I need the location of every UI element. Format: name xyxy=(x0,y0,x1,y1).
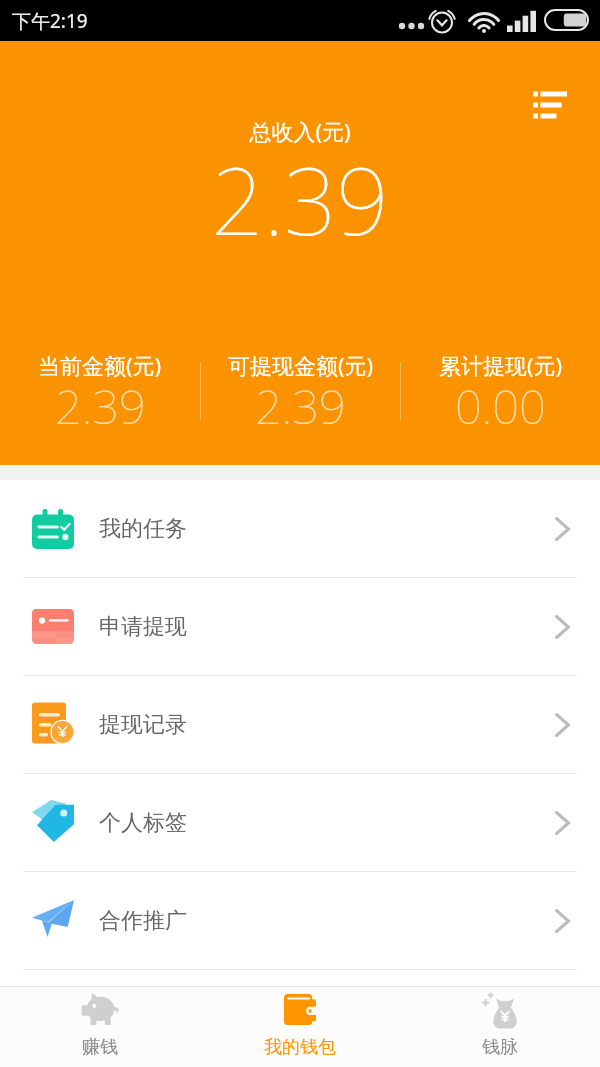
staticText: 提现记录 xyxy=(99,711,187,739)
button[interactable]: 钱脉 xyxy=(400,987,600,1067)
button[interactable]: 申请提现 xyxy=(0,578,600,675)
staticText: 2.39 xyxy=(211,137,389,262)
staticText: 累计提现(元) xyxy=(439,350,563,380)
staticText: 我的钱包 xyxy=(264,1036,336,1059)
button[interactable]: 我的任务 xyxy=(0,480,600,577)
button[interactable]: 我的钱包 xyxy=(200,987,400,1067)
staticText: 下午2:19 xyxy=(12,8,88,34)
staticText: 2.39 xyxy=(255,374,346,424)
staticText: 钱脉 xyxy=(482,1036,518,1059)
staticText: 总收入(元) xyxy=(249,116,351,146)
button[interactable]: 个人标签 xyxy=(0,774,600,871)
staticText: 可提现金额(元) xyxy=(228,350,374,380)
staticText: 个人标签 xyxy=(99,809,187,837)
staticText: 2.39 xyxy=(55,374,146,424)
staticText: 0.00 xyxy=(455,374,546,424)
button[interactable]: 明细 xyxy=(522,79,578,131)
staticText: 申请提现 xyxy=(99,613,187,641)
staticText: 赚钱 xyxy=(82,1036,118,1059)
staticText: 合作推广 xyxy=(99,907,187,935)
button[interactable]: 赚钱 xyxy=(0,987,200,1067)
button[interactable]: 提现记录 xyxy=(0,676,600,773)
button[interactable]: 合作推广 xyxy=(0,872,600,969)
staticText: 当前金额(元) xyxy=(38,350,162,380)
staticText: 我的任务 xyxy=(99,515,187,543)
